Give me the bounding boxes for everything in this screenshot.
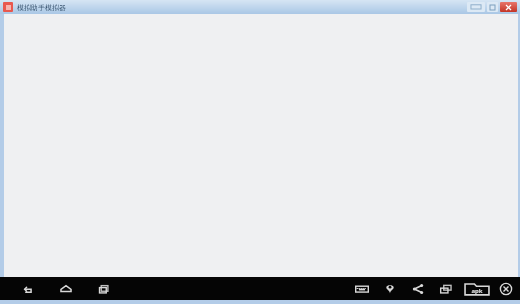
button[interactable]: Close: [498, 281, 514, 297]
button[interactable]: Location: [382, 281, 398, 297]
button[interactable]: Recent apps: [96, 281, 112, 297]
button[interactable]: Maximize: [487, 2, 498, 12]
button[interactable]: Home: [58, 281, 74, 297]
button[interactable]: Share: [410, 281, 426, 297]
button[interactable]: Close: [500, 2, 517, 12]
button[interactable]: Minimize: [467, 2, 485, 12]
button[interactable]: Back: [20, 281, 36, 297]
staticText: apk: [471, 287, 483, 295]
staticText: 模拟助手模拟器: [17, 3, 66, 12]
button[interactable]: APK: [464, 282, 490, 296]
button[interactable]: Keyboard: [354, 281, 370, 297]
button[interactable]: Screenshot: [438, 281, 454, 297]
